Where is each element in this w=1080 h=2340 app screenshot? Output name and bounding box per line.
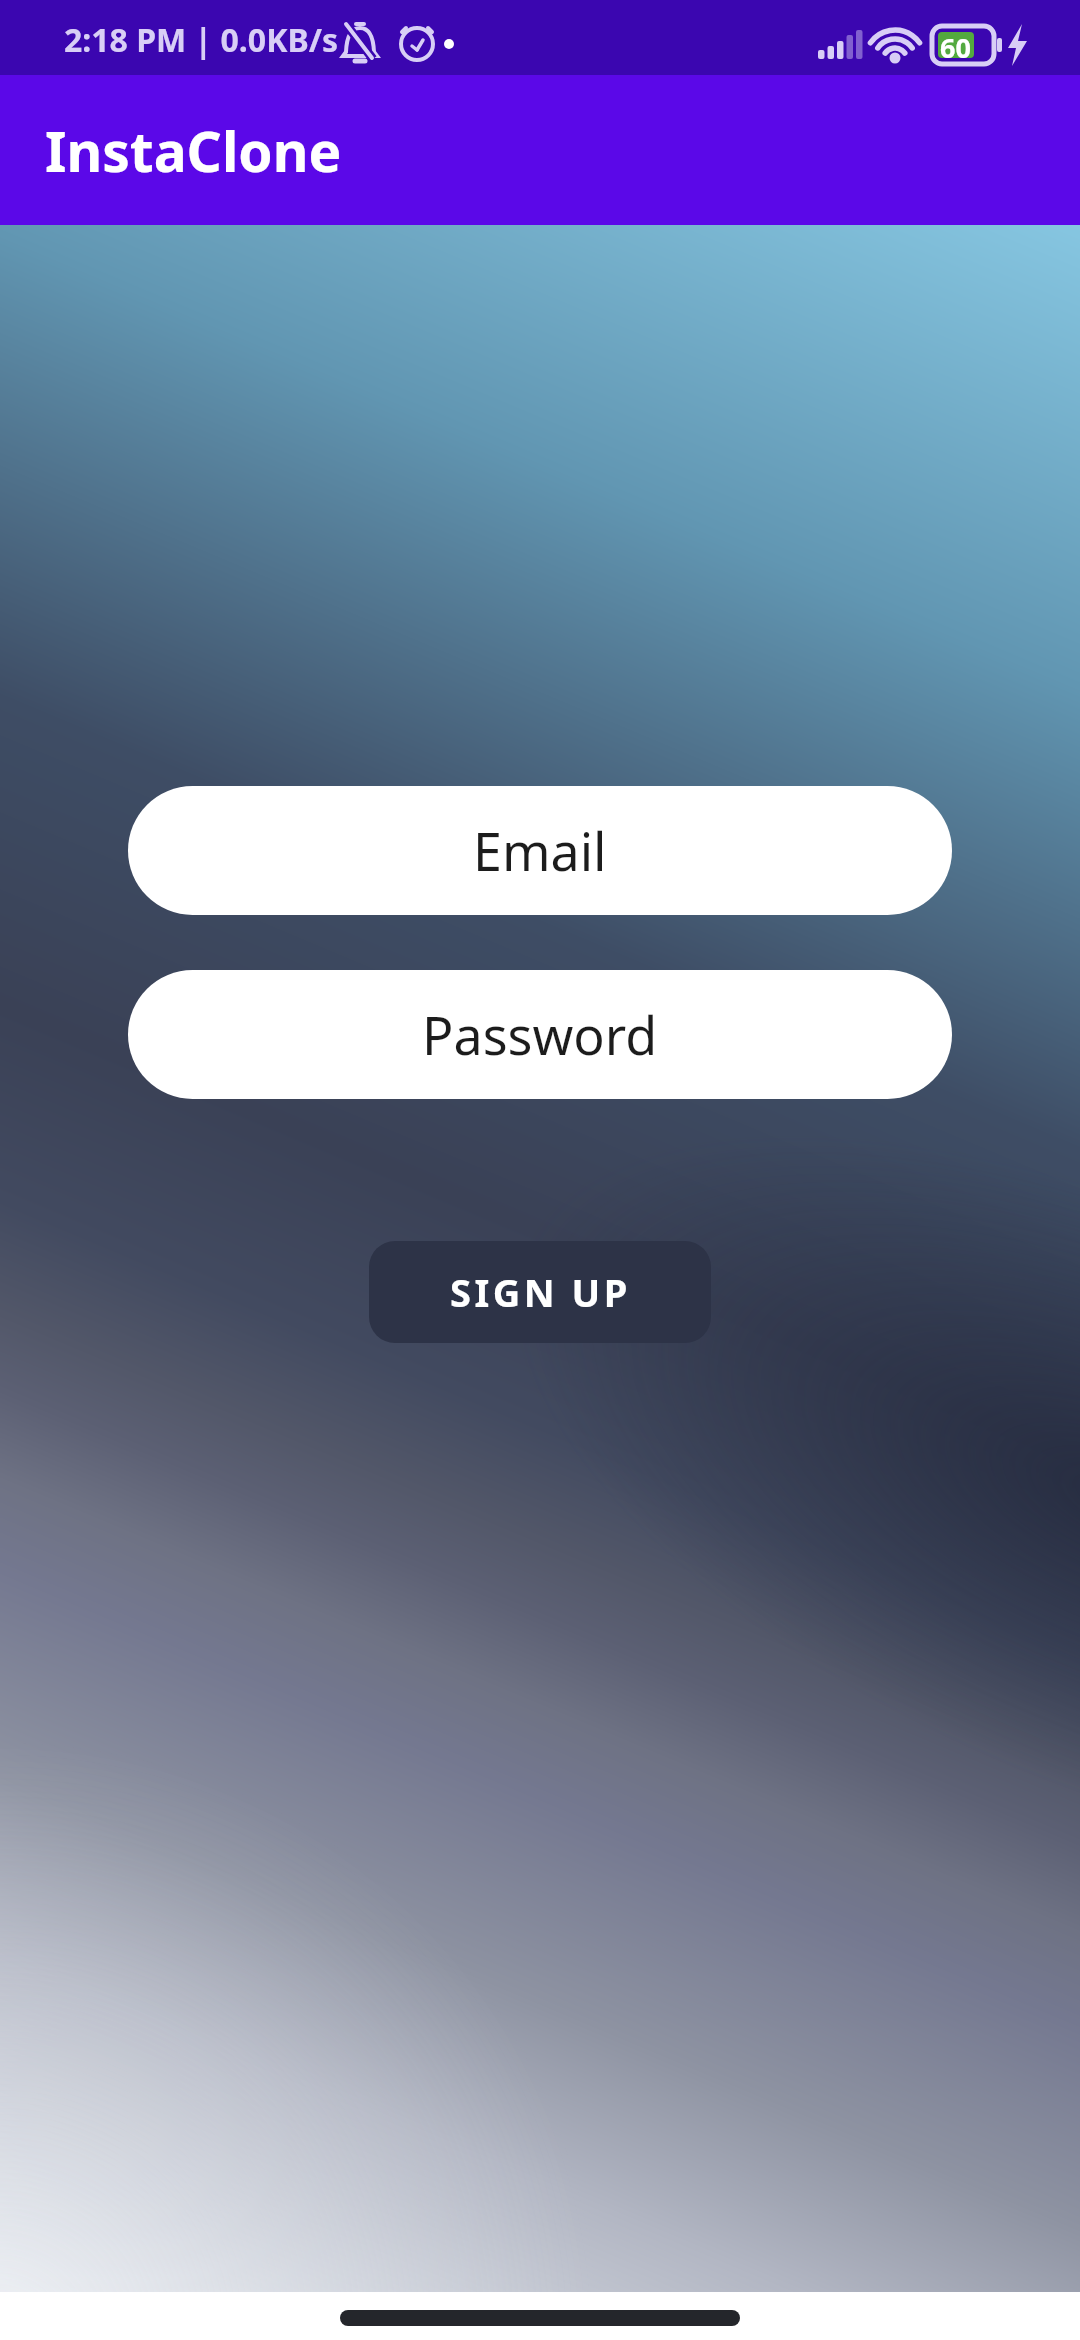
staticText: Email [473,815,607,886]
staticText: 2:18 PM | 0.0KB/s [64,18,339,62]
staticText: Password [422,999,658,1070]
staticText: 60 [940,29,971,66]
staticText: InstaClone [45,113,342,188]
staticText: SIGN UP [450,1266,631,1318]
button[interactable]: SIGN UP [369,1241,711,1343]
button[interactable]: Password [128,970,952,1099]
button[interactable]: Email [128,786,952,915]
